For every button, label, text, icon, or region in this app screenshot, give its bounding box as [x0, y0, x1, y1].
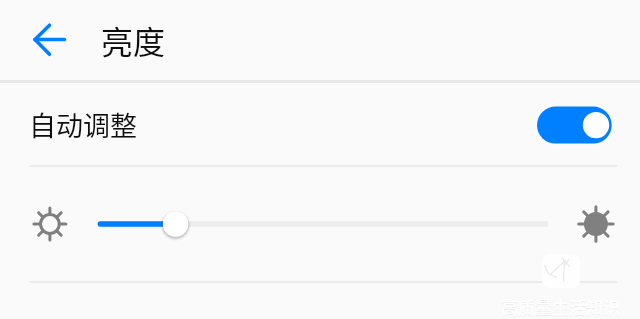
staticText: 亮度 [101, 17, 166, 63]
button[interactable]: 自动调整 [0, 82, 640, 165]
button[interactable]: Back [17, 7, 83, 73]
button[interactable]: Auto brightness toggle [537, 106, 612, 144]
staticText: 自动调整 [29, 105, 137, 144]
staticText: 高质量生活知识 [501, 294, 620, 319]
staticText: 高质量生活知识 [501, 295, 620, 319]
